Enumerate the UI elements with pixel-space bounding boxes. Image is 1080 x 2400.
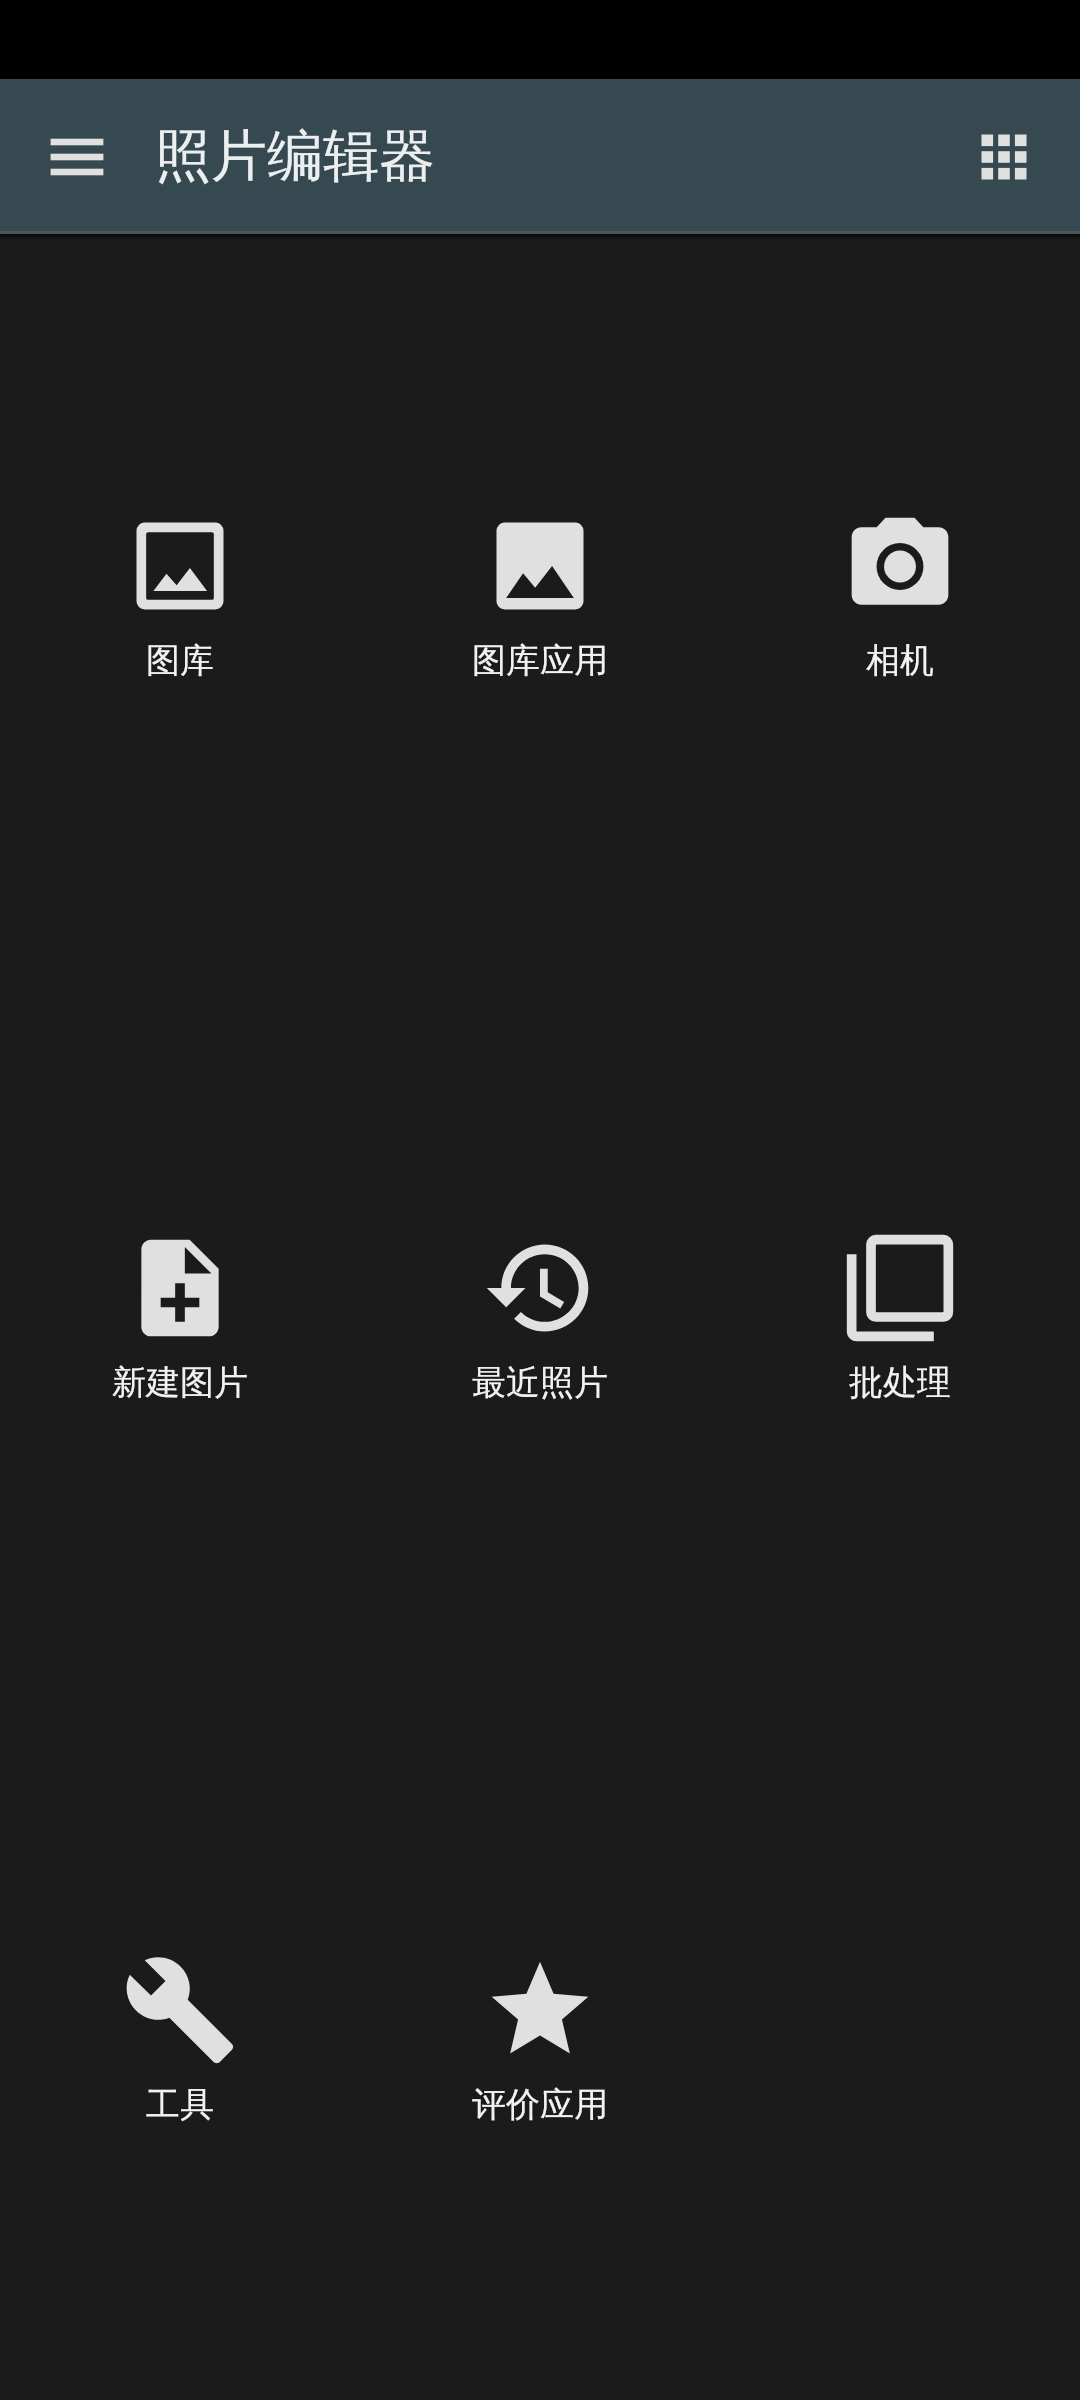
button[interactable]: 新建图片 (0, 956, 360, 1678)
button[interactable]: 批处理 (720, 956, 1080, 1678)
button[interactable]: 最近照片 (360, 956, 720, 1678)
staticText: 批处理 (849, 1361, 951, 1404)
button[interactable]: 相机 (720, 234, 1080, 956)
button[interactable]: 评价应用 (360, 1678, 720, 2400)
staticText: 工具 (146, 2083, 214, 2126)
staticText: 图库 (146, 639, 214, 682)
staticText: 照片编辑器 (155, 121, 435, 192)
button[interactable]: 图库 (0, 234, 360, 956)
button[interactable]: Apps (960, 113, 1048, 201)
button[interactable]: Navigation menu (33, 113, 121, 201)
staticText: 评价应用 (472, 2083, 608, 2126)
staticText: 相机 (866, 639, 934, 682)
staticText: 图库应用 (472, 639, 608, 682)
button[interactable]: 工具 (0, 1678, 360, 2400)
staticText: 最近照片 (472, 1361, 608, 1404)
staticText: 新建图片 (112, 1361, 248, 1404)
button[interactable]: 图库应用 (360, 234, 720, 956)
